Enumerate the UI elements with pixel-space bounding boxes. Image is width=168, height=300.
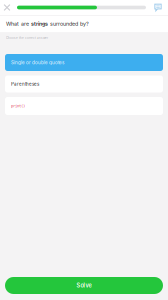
button[interactable]: Parentheses: [5, 75, 163, 92]
button[interactable]: Single or double quotes: [5, 54, 163, 71]
button[interactable]: Comments: [151, 0, 165, 15]
button[interactable]: Solve: [5, 277, 163, 294]
staticText: What are: [6, 21, 31, 27]
staticText: strings: [31, 21, 48, 27]
staticText: print(): [11, 104, 25, 108]
staticText: Single or double quotes: [11, 60, 64, 65]
staticText: Parentheses: [11, 81, 39, 87]
staticText: surrounded by?: [48, 21, 89, 27]
button[interactable]: print(): [5, 97, 163, 115]
button[interactable]: Close: [0, 0, 14, 15]
staticText: Solve: [76, 282, 91, 289]
staticText: Choose the correct answer: [6, 36, 48, 40]
